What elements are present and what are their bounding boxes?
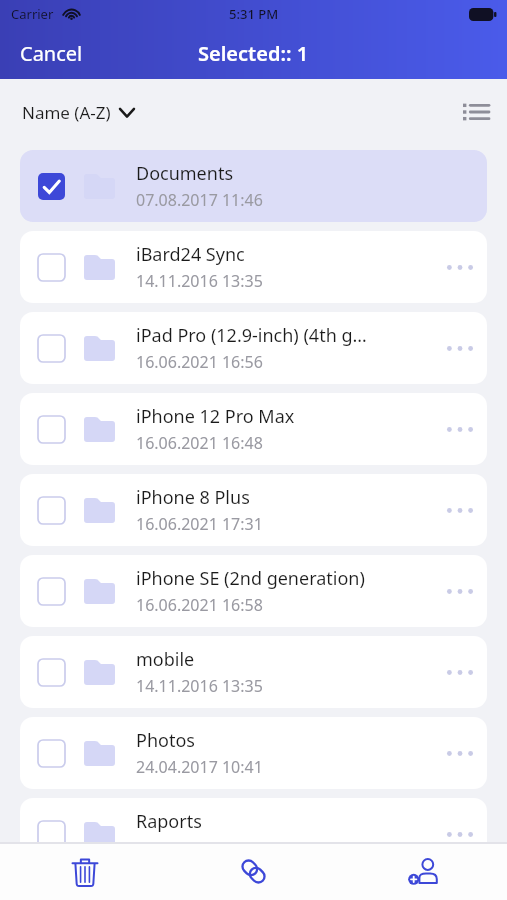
button[interactable]: Cancel (0, 31, 103, 76)
button[interactable]: iBard24 Sync (20, 231, 487, 303)
button[interactable]: More options (433, 409, 487, 450)
staticText: 16.06.2021 17:31 (136, 513, 263, 535)
button[interactable]: mobile (20, 636, 487, 708)
staticText: Selected:: 1 (198, 40, 309, 67)
staticText: Name (A-Z) (22, 101, 111, 124)
button[interactable]: View mode (455, 94, 497, 130)
button[interactable]: iPad Pro (12.9-inch) (4th g… (20, 312, 487, 384)
staticText: Raports (136, 809, 202, 834)
staticText: iPhone 12 Pro Max (136, 404, 295, 429)
staticText: Photos (136, 728, 195, 753)
button[interactable]: More options (433, 328, 487, 369)
button[interactable]: More options (433, 814, 487, 855)
staticText: Carrier (11, 5, 54, 23)
button[interactable]: More options (433, 652, 487, 693)
button[interactable]: More options (433, 490, 487, 531)
button[interactable]: Documents (20, 150, 487, 222)
staticText: 16.06.2021 16:58 (136, 594, 263, 616)
button[interactable]: More options (433, 733, 487, 774)
staticText: 16.06.2021 16:56 (136, 351, 263, 373)
button[interactable]: Name (A-Z) (12, 95, 144, 130)
button[interactable]: iPhone 12 Pro Max (20, 393, 487, 465)
staticText: 5:31 PM (229, 5, 279, 23)
button[interactable]: More options (433, 571, 487, 612)
staticText: 16.06.2021 16:48 (136, 432, 263, 454)
button[interactable]: Raports (20, 798, 487, 870)
button[interactable]: Share link (229, 847, 278, 896)
staticText: 14.11.2016 13:35 (136, 270, 263, 292)
button[interactable]: Delete (62, 847, 108, 897)
staticText: 24.04.2017 10:41 (136, 756, 263, 778)
staticText: Documents (136, 161, 234, 186)
button[interactable]: More options (433, 247, 487, 288)
staticText: mobile (136, 647, 195, 672)
staticText: 07.08.2017 11:46 (136, 189, 263, 211)
button[interactable]: Add user (398, 848, 448, 895)
staticText: iPhone 8 Plus (136, 485, 250, 510)
staticText: 24.04.2017 10:22 (136, 837, 263, 859)
staticText: Cancel (20, 40, 83, 67)
button[interactable]: iPhone 8 Plus (20, 474, 487, 546)
staticText: iPhone SE (2nd generation) (136, 566, 365, 591)
button[interactable]: iPhone SE (2nd generation) (20, 555, 487, 627)
staticText: iPad Pro (12.9-inch) (4th g… (136, 323, 367, 348)
staticText: iBard24 Sync (136, 242, 245, 267)
staticText: 14.11.2016 13:35 (136, 675, 263, 697)
button[interactable]: Photos (20, 717, 487, 789)
